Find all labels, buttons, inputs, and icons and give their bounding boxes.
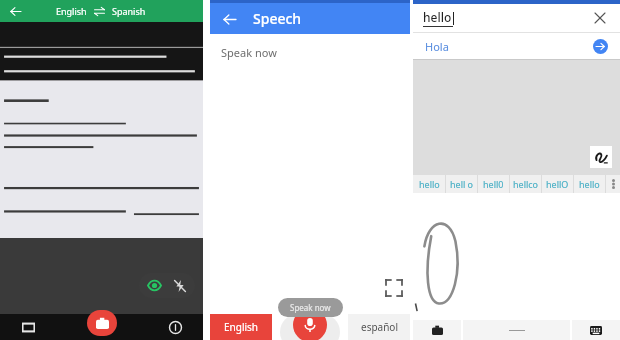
staticText: hell0 — [483, 178, 504, 190]
button[interactable]: Hola — [413, 33, 620, 59]
staticText: Spanish — [112, 5, 146, 17]
button[interactable]: Capture — [87, 310, 117, 336]
staticText: hell o — [450, 178, 474, 190]
button[interactable]: English — [56, 5, 146, 17]
button[interactable]: Back — [6, 2, 24, 20]
button[interactable]: English — [210, 314, 272, 340]
button[interactable]: hellco — [510, 175, 541, 193]
button[interactable]: español — [348, 314, 410, 340]
button[interactable]: hell0 — [478, 175, 509, 193]
staticText: Speak now — [290, 302, 331, 313]
staticText: Speech — [253, 9, 302, 28]
button[interactable]: hello — [574, 175, 605, 193]
button[interactable]: Flash off — [172, 278, 187, 293]
button[interactable]: Back — [219, 9, 239, 29]
button[interactable]: hello — [413, 175, 445, 193]
staticText: hellco — [513, 178, 539, 190]
staticText: hello — [419, 178, 440, 190]
staticText: English — [56, 5, 87, 17]
button[interactable]: Import image — [18, 317, 38, 337]
button[interactable]: hell o — [446, 175, 477, 193]
staticText: hellO — [546, 178, 569, 190]
button[interactable]: Fullscreen — [386, 280, 402, 296]
button[interactable]: Clear — [590, 8, 610, 28]
staticText: Speak now — [221, 45, 277, 60]
button[interactable]: Keyboard — [572, 320, 620, 340]
button[interactable]: Microphone — [293, 308, 327, 340]
button[interactable]: Instant translate — [165, 317, 185, 337]
button[interactable]: More suggestions — [606, 175, 620, 193]
staticText: hello — [579, 178, 600, 190]
staticText: hello — [423, 9, 452, 25]
button[interactable]: hellO — [542, 175, 573, 193]
staticText: Hola — [425, 39, 449, 54]
staticText: English — [224, 320, 259, 334]
button[interactable]: Space — [463, 320, 570, 340]
button[interactable]: Toggle overlay — [147, 278, 162, 293]
button[interactable]: Camera input — [413, 320, 461, 340]
staticText: español — [361, 320, 398, 334]
button[interactable]: Handwriting input — [590, 146, 612, 168]
